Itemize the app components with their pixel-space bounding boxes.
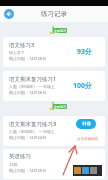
button[interactable]: 语文期末复习练习1	[3, 71, 105, 101]
staticText: 练习记录	[41, 10, 67, 18]
staticText: 英语练习	[9, 153, 31, 160]
staticText: 语文练习3	[9, 41, 35, 49]
staticText: 补做	[82, 121, 91, 127]
staticText: 截止日期：	[9, 90, 29, 95]
staticText: 立即练习	[54, 105, 66, 109]
button[interactable]: 语文练习3	[3, 37, 105, 67]
staticText: 点击补做按钮	[77, 137, 98, 141]
staticText: 截止日期：	[9, 168, 29, 173]
button[interactable]: 补做	[76, 119, 96, 129]
staticText: 100分	[73, 81, 93, 91]
staticText: 12月25日	[29, 168, 47, 173]
staticText: 立即练习	[54, 29, 66, 33]
button[interactable]: 立即练习	[53, 28, 67, 33]
staticText: 人教（部编版） ·一年级上	[9, 84, 56, 89]
staticText: 12月24日	[29, 135, 47, 140]
staticText: 班上学了	[9, 50, 25, 55]
staticText: 12月26日	[29, 90, 47, 95]
staticText: 22班	[9, 162, 18, 167]
button[interactable]: 立即练习	[53, 104, 67, 109]
button[interactable]: 语文期末复习练习3	[3, 116, 105, 146]
staticText: 12月26日	[29, 56, 47, 61]
staticText: 截止日期：	[9, 135, 29, 140]
staticText: 截止日期：	[9, 56, 29, 61]
button[interactable]: Back	[4, 9, 14, 19]
staticText: 语文期末复习练习3	[9, 120, 57, 128]
staticText: 语文期末复习练习1	[9, 75, 57, 83]
staticText: 人教（部编版） ·一年级上	[9, 129, 56, 134]
staticText: 93分	[77, 47, 93, 57]
button[interactable]: 英语练习	[3, 149, 105, 179]
